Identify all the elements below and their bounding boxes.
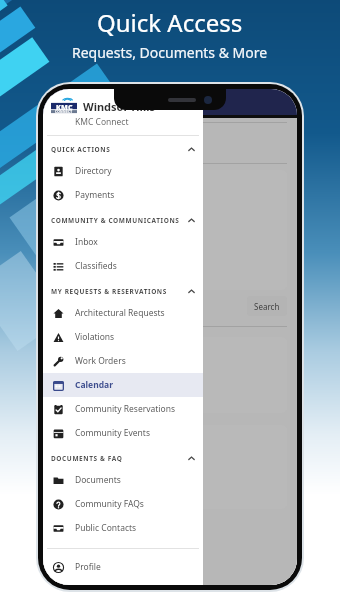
staticText: $150.00 bbox=[144, 458, 196, 477]
button[interactable]: Profile bbox=[43, 555, 203, 579]
staticText: Documents bbox=[75, 474, 121, 486]
button[interactable]: MY REQUESTS & RESERVATIONS bbox=[43, 278, 203, 301]
staticText: KMC Connect bbox=[75, 116, 129, 128]
button[interactable]: Community Reservations bbox=[43, 397, 203, 421]
button[interactable]: Community Events bbox=[43, 421, 203, 445]
staticText: MY REQUESTS & RESERVATIONS bbox=[51, 287, 167, 296]
button[interactable]: Documents bbox=[43, 468, 203, 492]
button[interactable]: Work Orders bbox=[43, 349, 203, 373]
button[interactable]: Classifieds bbox=[43, 254, 203, 278]
button[interactable]: Public Contacts bbox=[43, 516, 203, 540]
button[interactable]: DOCUMENTS & FAQ bbox=[43, 445, 203, 468]
button[interactable]: Violations bbox=[43, 325, 203, 349]
staticText: Directory bbox=[75, 165, 112, 177]
button[interactable]: COMMUNITY & COMMUNICATIONS bbox=[43, 207, 203, 230]
staticText: DOCUMENTS & FAQ bbox=[51, 454, 123, 463]
button[interactable]: Inbox bbox=[43, 230, 203, 254]
staticText: 11/12/2021 bbox=[57, 235, 100, 246]
staticText: Inbox bbox=[75, 236, 98, 248]
staticText: Balance bbox=[57, 341, 91, 353]
staticText: Calendar bbox=[75, 379, 113, 391]
button[interactable]: Calendar bbox=[43, 373, 203, 397]
button[interactable]: Payments bbox=[43, 183, 203, 207]
staticText: KMC bbox=[56, 103, 73, 113]
staticText: Community FAQs bbox=[75, 498, 144, 510]
button[interactable]: Directory bbox=[43, 159, 203, 183]
staticText: CONNECT bbox=[55, 110, 73, 114]
staticText: Payments bbox=[75, 189, 115, 201]
staticText: Profile bbox=[75, 561, 101, 573]
staticText: Payment bbox=[78, 262, 117, 274]
button[interactable]: About bbox=[43, 579, 203, 585]
staticText: Classifieds bbox=[75, 260, 117, 272]
staticText: Public Contacts bbox=[75, 522, 137, 534]
staticText: Search bbox=[254, 301, 280, 312]
staticText: Windsor Hills bbox=[83, 99, 155, 114]
staticText: Architectural Requests bbox=[75, 307, 165, 319]
staticText: Quick Access bbox=[97, 6, 243, 39]
staticText: QUICK ACTIONS bbox=[51, 145, 111, 154]
staticText: Requests, Documents & More bbox=[72, 43, 268, 62]
staticText: Work Orders bbox=[75, 355, 126, 367]
staticText: Community Events bbox=[75, 427, 150, 439]
staticText: COMMUNITY & COMMUNICATIONS bbox=[51, 216, 180, 225]
button[interactable]: Community FAQs bbox=[43, 492, 203, 516]
button[interactable]: QUICK ACTIONS bbox=[43, 136, 203, 159]
staticText: Violations bbox=[75, 331, 115, 343]
staticText: Community Reservations bbox=[75, 403, 175, 415]
button[interactable]: Architectural Requests bbox=[43, 301, 203, 325]
